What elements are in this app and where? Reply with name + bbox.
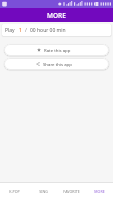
staticText: FAVORITE: [63, 189, 80, 194]
button[interactable]: FAVORITE: [57, 183, 85, 200]
staticText: 00 hour 00 min: [30, 27, 66, 34]
staticText: Share this app: [43, 61, 72, 67]
staticText: Rate this app: [44, 47, 71, 53]
staticText: Play: [5, 27, 15, 34]
other: Rate: [37, 48, 41, 52]
button[interactable]: Play: [2, 24, 111, 36]
staticText: MORE: [94, 189, 105, 194]
button[interactable]: Share: [4, 58, 109, 70]
other: Share: [36, 62, 40, 66]
button[interactable]: Rate: [4, 44, 109, 56]
button[interactable]: K-POP: [0, 183, 29, 200]
button[interactable]: SING: [29, 183, 57, 200]
staticText: 1: [19, 27, 22, 34]
button[interactable]: MORE: [85, 183, 113, 200]
staticText: SING: [39, 189, 48, 194]
staticText: MORE: [47, 11, 66, 20]
staticText: /: [25, 27, 27, 34]
staticText: K-POP: [9, 189, 20, 194]
